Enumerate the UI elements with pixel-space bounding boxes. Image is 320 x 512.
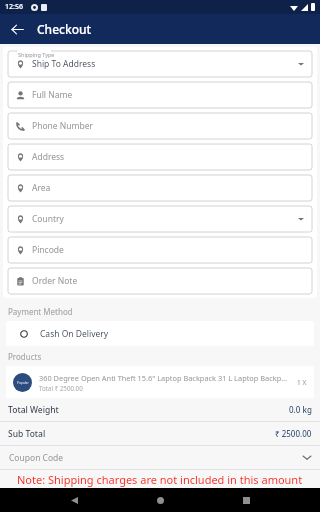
staticText: 1 X (297, 378, 307, 387)
staticText: Full Name (32, 89, 304, 101)
button[interactable]: Order Note (8, 268, 312, 294)
staticText: ₹ 2500.00 (275, 428, 312, 439)
button[interactable]: Total Weight (8, 398, 312, 421)
staticText: Sub Total (8, 428, 275, 440)
other: Expand coupon (303, 455, 311, 460)
staticText: Popular (17, 381, 29, 385)
staticText: Pincode (32, 244, 304, 256)
staticText: Area (32, 182, 304, 194)
staticText: Shipping Type (18, 51, 55, 58)
staticText: Ship To Address (32, 58, 298, 70)
staticText: Payment Method (8, 306, 73, 317)
button[interactable]: Recent apps (234, 488, 258, 512)
staticText: Checkout (37, 21, 92, 37)
button[interactable]: Address (8, 144, 312, 170)
staticText: Order Note (32, 275, 304, 287)
button[interactable]: Country (8, 206, 312, 232)
staticText: Note: Shipping charges are not included … (17, 472, 303, 487)
staticText: Address (32, 151, 304, 163)
button[interactable]: Area (8, 175, 312, 201)
staticText: Total ₹ 2500.00 (39, 384, 83, 392)
staticText: Country (32, 213, 298, 225)
staticText: Total Weight (8, 404, 289, 416)
staticText: 0.0 kg (289, 404, 312, 415)
button[interactable]: Shipping Type (8, 51, 312, 77)
button[interactable]: Full Name (8, 82, 312, 108)
button[interactable]: Pincode (8, 237, 312, 263)
button[interactable]: Popular (6, 366, 314, 398)
button[interactable]: Coupon Code (9, 446, 311, 469)
button[interactable]: Sub Total (8, 422, 312, 445)
button[interactable]: Phone Number (8, 113, 312, 139)
staticText: Coupon Code (9, 452, 303, 464)
button[interactable]: Cash On Delivery (6, 321, 314, 346)
staticText: Cash On Delivery (40, 328, 109, 340)
button[interactable]: Back (4, 16, 30, 42)
staticText: 12:56 (5, 2, 23, 12)
button[interactable]: Back (62, 488, 86, 512)
staticText: 360 Degree Open Anti Theft 15.6" Laptop … (39, 373, 291, 383)
button[interactable]: Home (148, 488, 172, 512)
staticText: Products (8, 351, 42, 362)
staticText: Phone Number (32, 120, 304, 132)
